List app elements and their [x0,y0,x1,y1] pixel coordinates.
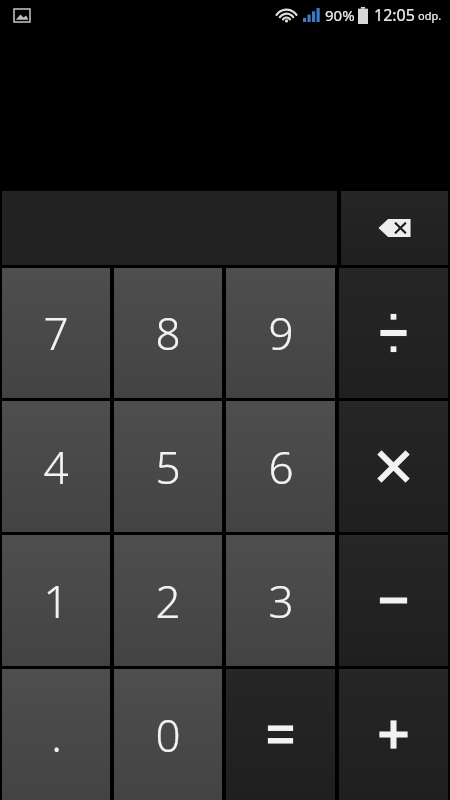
staticText: 9 [268,303,294,363]
staticText: 2 [155,571,181,631]
staticText: 7 [43,303,69,363]
button[interactable]: . [2,669,110,800]
button[interactable]: 7 [2,268,110,398]
button[interactable]: Multiply [339,401,448,532]
button[interactable]: 5 [114,401,222,532]
button[interactable]: 3 [226,535,335,666]
button[interactable]: Add [339,669,448,800]
staticText: 6 [268,437,294,497]
staticText: . [51,705,62,765]
button[interactable]: 2 [114,535,222,666]
staticText: 12:05 [374,4,415,26]
staticText: 8 [155,303,181,363]
staticText: odp. [418,8,442,23]
button[interactable]: Equals [226,669,335,800]
button[interactable]: 4 [2,401,110,532]
button[interactable]: Backspace [341,191,448,265]
staticText: 4 [43,437,69,497]
staticText: 5 [155,437,181,497]
staticText: 1 [43,571,69,631]
button[interactable]: 1 [2,535,110,666]
button[interactable]: 8 [114,268,222,398]
button[interactable]: 9 [226,268,335,398]
staticText: 90% [325,5,355,25]
button[interactable]: Divide [339,268,448,398]
staticText: 3 [268,571,294,631]
button[interactable]: 6 [226,401,335,532]
button[interactable]: Subtract [339,535,448,666]
staticText: 0 [155,705,181,765]
button[interactable]: 0 [114,669,222,800]
